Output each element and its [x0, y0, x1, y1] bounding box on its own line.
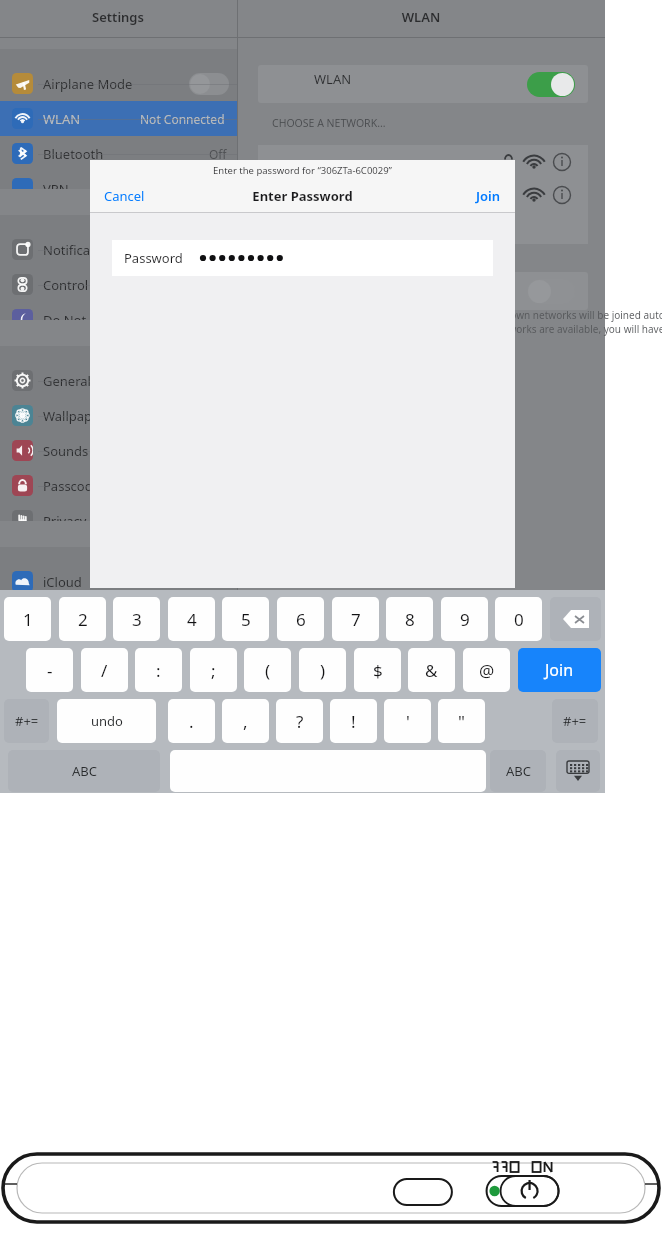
button[interactable]: 5 — [222, 597, 269, 641]
button[interactable] — [258, 178, 588, 211]
button[interactable]: - — [26, 648, 73, 692]
staticText: . — [189, 710, 194, 733]
staticText: General — [43, 372, 91, 390]
button[interactable] — [258, 145, 588, 178]
button[interactable]: ( — [244, 648, 291, 692]
button[interactable]: : — [135, 648, 182, 692]
staticText: iCloud — [43, 573, 82, 591]
staticText: Join — [476, 187, 501, 205]
button[interactable]: 1 — [4, 597, 51, 641]
staticText: ; — [211, 659, 216, 682]
button[interactable]: Hide keyboard — [556, 750, 600, 792]
button[interactable]: Airplane Mode — [0, 66, 237, 101]
button[interactable]: Join — [518, 648, 601, 692]
button[interactable]: General — [0, 363, 237, 398]
button[interactable]: Wallpaper — [0, 398, 237, 433]
staticText: Control Centre — [43, 276, 133, 294]
button[interactable]: Bluetooth — [0, 136, 237, 171]
button[interactable]: undo — [57, 699, 156, 743]
button[interactable]: Delete — [550, 597, 601, 641]
staticText: Notifications — [43, 241, 121, 259]
staticText: 9 — [460, 608, 470, 631]
staticText: Cancel — [104, 187, 145, 205]
staticText: Off — [209, 146, 227, 162]
button[interactable]: ; — [190, 648, 237, 692]
button[interactable]: ! — [330, 699, 377, 743]
staticText: 5 — [241, 608, 251, 631]
button[interactable]: Do Not Disturb — [0, 302, 237, 337]
staticText: ABC — [72, 762, 97, 780]
button[interactable] — [258, 65, 588, 103]
staticText: WLAN — [43, 110, 81, 128]
button[interactable]: Cancel — [104, 187, 145, 205]
button[interactable]: Join — [476, 187, 501, 205]
button[interactable] — [258, 272, 588, 310]
button[interactable]: 7 — [332, 597, 379, 641]
button[interactable]: Passcode — [0, 468, 237, 503]
button[interactable]: , — [222, 699, 269, 743]
staticText: Airplane Mode — [43, 75, 133, 93]
staticText: 6 — [296, 608, 306, 631]
button[interactable]: " — [438, 699, 485, 743]
button[interactable]: 2 — [59, 597, 106, 641]
staticText: - — [47, 659, 53, 682]
button[interactable]: Password — [112, 240, 493, 276]
button[interactable]: 4 — [168, 597, 215, 641]
button[interactable]: VPN — [0, 171, 237, 206]
staticText: CHOOSE A NETWORK... — [272, 116, 386, 130]
staticText: 0 — [514, 608, 524, 631]
staticText: 3 — [132, 608, 142, 631]
staticText: Join — [545, 659, 574, 681]
staticText: #+= — [15, 712, 39, 730]
staticText: ) — [320, 659, 326, 682]
button[interactable]: #+= — [4, 699, 49, 743]
button[interactable]: 0 — [495, 597, 542, 641]
staticText: Wallpaper — [43, 407, 105, 425]
staticText: , — [243, 710, 248, 733]
button[interactable]: ) — [299, 648, 346, 692]
button[interactable]: . — [168, 699, 215, 743]
button[interactable]: / — [81, 648, 128, 692]
button[interactable]: 6 — [277, 597, 324, 641]
button[interactable]: ABC — [490, 750, 546, 792]
staticText: $ — [373, 659, 383, 682]
staticText: Privacy — [43, 512, 87, 530]
staticText: / — [101, 659, 108, 682]
staticText: Passcode — [43, 477, 101, 495]
button[interactable]: 8 — [386, 597, 433, 641]
button[interactable]: 3 — [113, 597, 160, 641]
staticText: WLAN — [311, 8, 531, 26]
staticText: @ — [479, 659, 495, 682]
button[interactable]: WLAN on — [527, 72, 575, 97]
staticText: undo — [91, 712, 123, 730]
button[interactable]: WLAN — [0, 101, 237, 136]
button[interactable]: #+= — [552, 699, 598, 743]
staticText: Do Not Disturb — [43, 311, 135, 329]
button[interactable]: @ — [463, 648, 510, 692]
staticText: 2 — [78, 608, 88, 631]
button[interactable]: & — [408, 648, 455, 692]
staticText: Enter Password — [90, 187, 515, 205]
button[interactable]: Ask to join networks off — [527, 279, 575, 304]
button[interactable]: $ — [354, 648, 401, 692]
button[interactable]: ABC — [8, 750, 160, 792]
button[interactable]: Notifications — [0, 232, 237, 267]
staticText: ' — [406, 710, 410, 733]
staticText: #+= — [563, 712, 587, 730]
button[interactable]: Sounds — [0, 433, 237, 468]
staticText: Bluetooth — [43, 145, 104, 163]
staticText: Password — [124, 249, 183, 267]
button[interactable]: iCloud — [0, 564, 237, 599]
button[interactable]: 9 — [441, 597, 488, 641]
staticText: 1 — [23, 608, 33, 631]
button[interactable] — [258, 211, 588, 244]
staticText: Sounds — [43, 442, 89, 460]
button[interactable]: ? — [276, 699, 323, 743]
button[interactable]: Control Centre — [0, 267, 237, 302]
button[interactable]: ' — [384, 699, 431, 743]
staticText: VPN — [43, 180, 69, 198]
staticText: WLAN — [314, 70, 352, 88]
button[interactable]: Privacy — [0, 503, 237, 538]
staticText: networks are available, you will have to… — [493, 322, 662, 336]
